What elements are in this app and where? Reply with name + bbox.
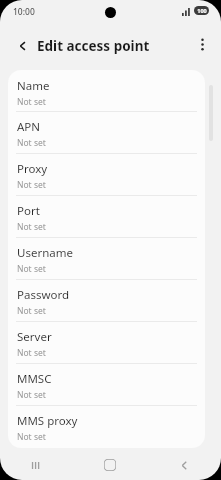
staticText: Server (17, 329, 52, 345)
button[interactable]: Password (8, 280, 205, 321)
staticText: Name (17, 78, 50, 94)
staticText: Not set (17, 347, 46, 359)
button[interactable]: Home (73, 450, 147, 480)
button[interactable]: MMSC (8, 364, 205, 405)
button[interactable]: Server (8, 322, 205, 363)
staticText: 100 (197, 7, 207, 14)
staticText: Edit access point (37, 37, 150, 55)
staticText: MMS proxy (17, 413, 78, 429)
staticText: Username (17, 245, 73, 261)
staticText: Not set (17, 263, 46, 275)
button[interactable]: Back (147, 450, 221, 480)
staticText: Password (17, 287, 70, 303)
staticText: Not set (17, 137, 46, 149)
button[interactable]: Recents (0, 450, 73, 480)
staticText: Not set (17, 179, 46, 191)
staticText: MMSC (17, 371, 52, 387)
staticText: APN (17, 119, 41, 135)
button[interactable]: Username (8, 238, 205, 279)
staticText: Not set (17, 389, 46, 401)
button[interactable]: Port (8, 196, 205, 237)
staticText: Proxy (17, 161, 48, 177)
button[interactable]: Proxy (8, 154, 205, 195)
button[interactable]: More options (191, 33, 213, 55)
button[interactable]: MMS proxy (8, 406, 205, 447)
staticText: Not set (17, 96, 46, 108)
staticText: Not set (17, 305, 46, 317)
button[interactable]: Back (10, 33, 36, 59)
staticText: 10:00 (13, 6, 35, 18)
button[interactable]: Name (8, 70, 205, 111)
staticText: Port (17, 203, 40, 219)
button[interactable]: APN (8, 112, 205, 153)
staticText: Not set (17, 221, 46, 233)
staticText: Not set (17, 431, 46, 443)
